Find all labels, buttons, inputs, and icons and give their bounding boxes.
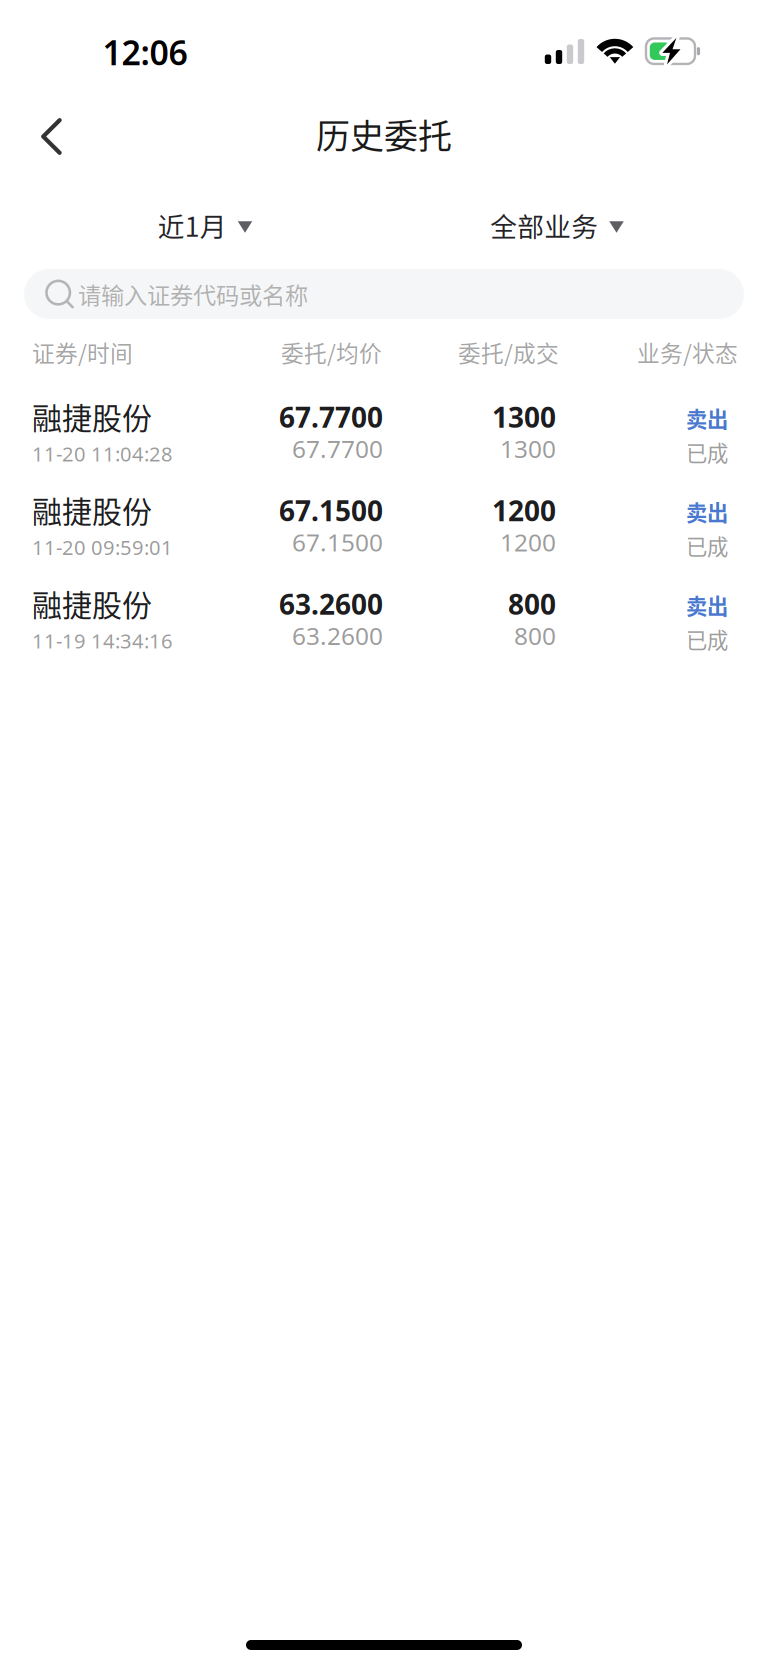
staticText: 卖出 <box>686 590 728 620</box>
staticText: 11-19 14:34:16 <box>32 627 173 654</box>
staticText: 卖出 <box>686 496 728 527</box>
staticText: 1200 <box>500 525 556 559</box>
staticText: 已成 <box>686 436 728 467</box>
staticText: 已成 <box>686 530 728 561</box>
staticText: 近1月 <box>158 206 227 244</box>
staticText: 融捷股份 <box>32 488 152 531</box>
staticText: 67.1500 <box>292 525 383 559</box>
staticText: 12:06 <box>102 29 187 75</box>
staticText: 63.2600 <box>292 619 383 652</box>
button[interactable]: 融捷股份 <box>0 485 768 565</box>
staticText: 1300 <box>500 432 556 465</box>
staticText: 卖出 <box>686 403 728 433</box>
staticText: 证券/时间 <box>32 336 133 368</box>
button[interactable]: 融捷股份 <box>0 579 768 659</box>
button[interactable]: Back <box>18 103 84 169</box>
staticText: 63.2600 <box>279 585 383 623</box>
button[interactable]: 全部业务 <box>482 192 632 258</box>
staticText: 委托/成交 <box>458 336 559 368</box>
staticText: 800 <box>514 619 556 652</box>
staticText: 67.7700 <box>292 432 383 465</box>
staticText: 历史委托 <box>316 109 452 159</box>
staticText: 全部业务 <box>490 206 598 244</box>
button[interactable]: 请输入证券代码或名称 <box>24 269 744 319</box>
staticText: 融捷股份 <box>32 582 152 625</box>
staticText: 800 <box>508 585 556 623</box>
staticText: 11-20 09:59:01 <box>32 533 173 561</box>
staticText: 67.1500 <box>279 491 383 529</box>
staticText: 请输入证券代码或名称 <box>78 277 308 311</box>
staticText: 融捷股份 <box>32 395 152 438</box>
staticText: 已成 <box>686 623 728 654</box>
staticText: 委托/均价 <box>281 336 382 368</box>
staticText: 11-20 11:04:28 <box>32 440 173 467</box>
staticText: 67.7700 <box>279 398 383 436</box>
staticText: 1300 <box>492 398 556 436</box>
staticText: 1200 <box>492 491 556 529</box>
staticText: 业务/状态 <box>637 336 738 368</box>
button[interactable]: 近1月 <box>150 192 260 258</box>
button[interactable]: 融捷股份 <box>0 392 768 472</box>
